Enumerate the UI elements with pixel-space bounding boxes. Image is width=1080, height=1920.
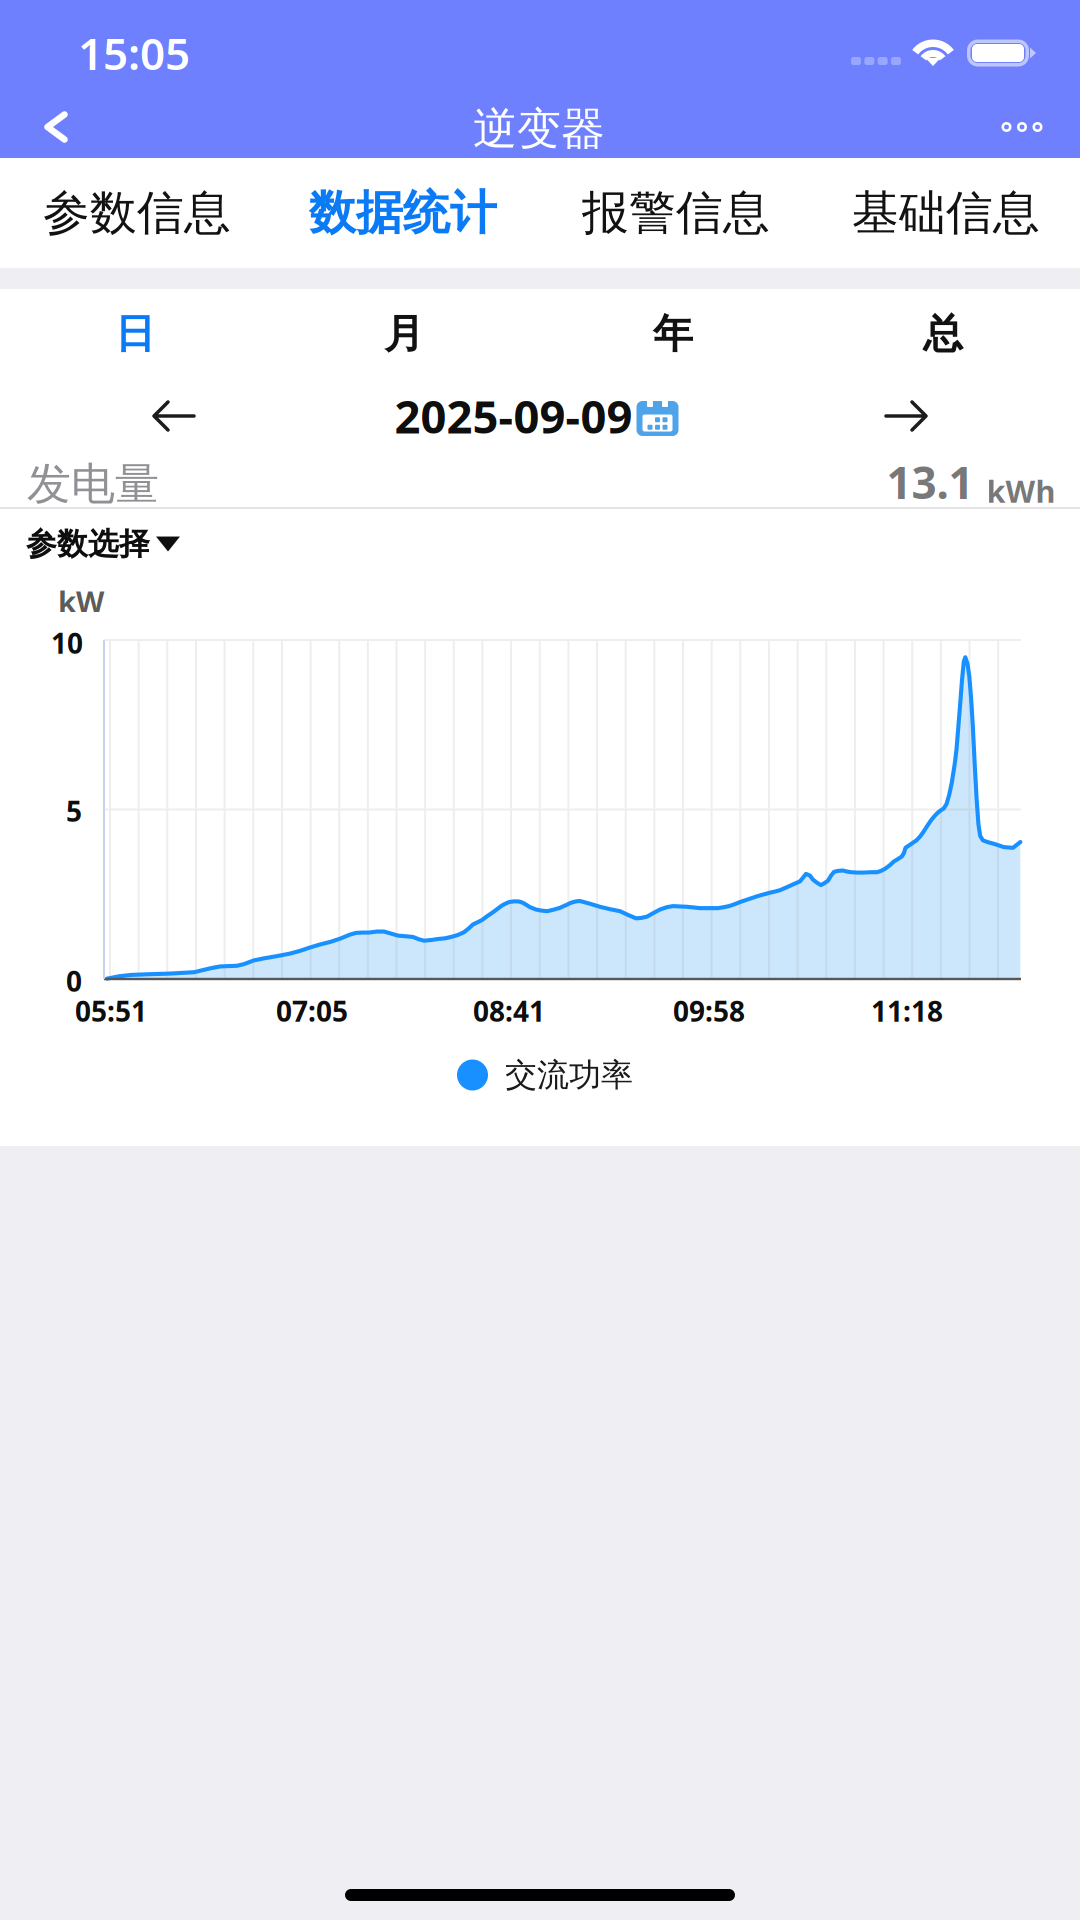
staticText: 5 [66, 792, 82, 830]
button[interactable]: 年 [538, 294, 808, 374]
button[interactable]: Next day [831, 378, 981, 454]
staticText: 15:05 [78, 24, 190, 82]
button[interactable]: 数据统计 [268, 158, 538, 268]
button[interactable]: 2025-09-09 [394, 378, 679, 454]
staticText: 月 [384, 309, 424, 358]
button[interactable]: 参数选择 [26, 516, 180, 572]
button[interactable]: 基础信息 [811, 158, 1080, 268]
button[interactable]: 报警信息 [541, 158, 811, 268]
staticText: 2025-09-09 [394, 386, 632, 446]
staticText: 08:41 [473, 992, 545, 1030]
staticText: 05:51 [75, 992, 147, 1030]
staticText: 09:58 [673, 992, 745, 1030]
staticText: 07:05 [276, 992, 348, 1030]
staticText: 日 [115, 309, 155, 358]
staticText: 数据统计 [309, 184, 497, 242]
staticText: 发电量 [27, 457, 159, 511]
staticText: 基础信息 [852, 184, 1040, 242]
staticText: 参数选择 [26, 525, 150, 563]
staticText: 年 [653, 309, 693, 358]
staticText: 逆变器 [473, 102, 605, 156]
button[interactable]: 总 [808, 294, 1078, 374]
staticText: 0 [66, 962, 82, 1000]
button[interactable]: Previous day [99, 378, 249, 454]
staticText: kW [58, 581, 104, 620]
staticText: 10 [51, 624, 83, 662]
button[interactable]: Back [6, 91, 106, 163]
button[interactable]: 月 [269, 294, 539, 374]
button[interactable]: 日 [0, 294, 270, 374]
button[interactable]: More options [972, 91, 1072, 163]
staticText: 参数信息 [43, 184, 231, 242]
staticText: 报警信息 [582, 184, 770, 242]
staticText: kWh [986, 470, 1055, 511]
staticText: 交流功率 [505, 1055, 633, 1095]
staticText: 11:18 [871, 992, 943, 1030]
button[interactable]: 参数信息 [2, 158, 272, 268]
staticText: 总 [923, 309, 963, 358]
staticText: 13.1 [886, 453, 973, 511]
